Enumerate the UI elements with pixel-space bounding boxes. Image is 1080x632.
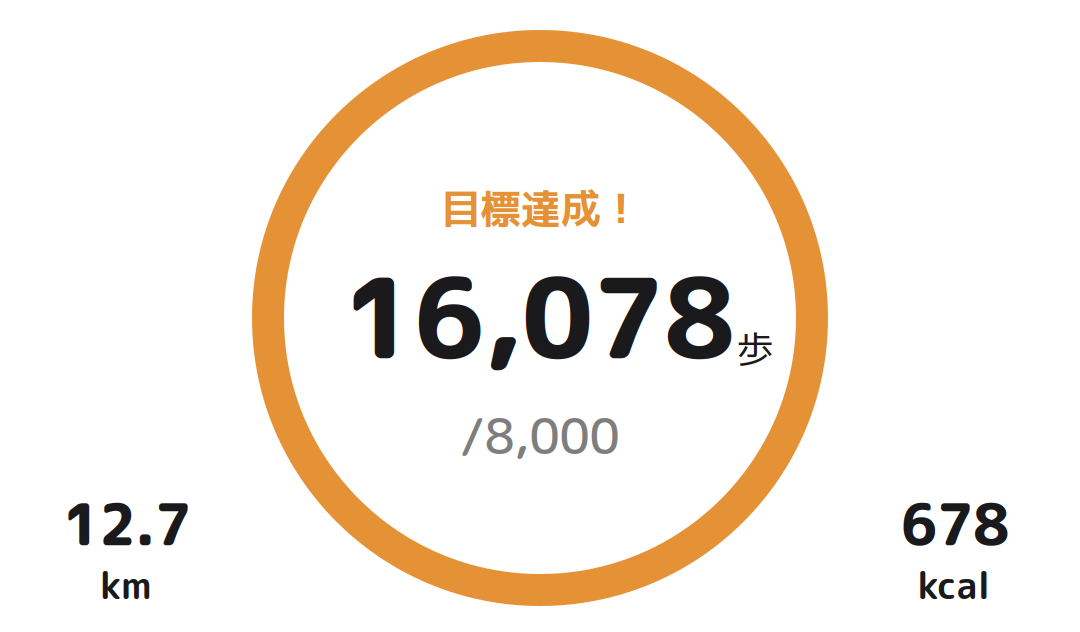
staticText: 歩 — [736, 323, 773, 375]
button[interactable]: Distance: 12.7 kilometres — [36, 489, 216, 619]
button[interactable]: Steps: 16,078 of 8,000 — goal reached — [252, 30, 828, 606]
button[interactable]: Active energy: 678 kilocalories — [864, 489, 1044, 619]
staticText: 目標達成！ — [441, 180, 641, 236]
staticText: 12.7 — [63, 485, 191, 563]
staticText: /8,000 — [460, 402, 619, 469]
staticText: 678 — [901, 485, 1009, 563]
staticText: 16,078 — [343, 241, 735, 393]
staticText: kcal — [917, 559, 990, 611]
staticText: km — [100, 559, 152, 611]
